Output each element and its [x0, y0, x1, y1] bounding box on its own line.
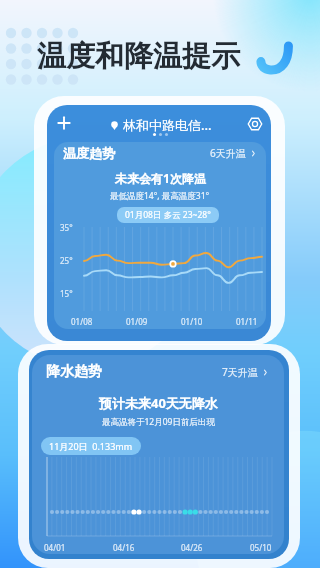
staticText: 降水趋势 — [46, 363, 102, 381]
button[interactable]: Settings — [247, 116, 263, 132]
staticText: 最低温度14°, 最高温度31° — [110, 190, 210, 202]
staticText: 25° — [60, 255, 73, 266]
staticText: 6天升温 — [210, 146, 246, 160]
staticText: 未来会有1次降温 — [115, 170, 206, 186]
staticText: 温度和降温提示 — [37, 38, 240, 75]
staticText: 04/26 — [181, 542, 203, 553]
button[interactable]: Add city — [54, 113, 74, 133]
staticText: 04/16 — [113, 542, 135, 553]
staticText: 01月08日 多云 23~28° — [125, 209, 211, 221]
button[interactable]: 6天升温 — [210, 146, 266, 160]
staticText: 温度趋势 — [63, 145, 115, 161]
staticText: 01/10 — [181, 316, 203, 327]
button[interactable]: 7天升温 — [222, 365, 284, 379]
button[interactable]: 降水趋势 — [29, 350, 289, 559]
staticText: 11月20日 0.133mm — [49, 440, 133, 452]
staticText: 预计未来40天无降水 — [99, 394, 218, 412]
staticText: 最高温将于12月09日前后出现 — [102, 416, 215, 428]
staticText: 01/11 — [236, 316, 258, 327]
staticText: 01/08 — [71, 316, 93, 327]
button[interactable]: Add city — [47, 105, 271, 341]
staticText: 林和中路电信... — [123, 116, 212, 134]
staticText: 7天升温 — [222, 365, 258, 379]
staticText: 15° — [60, 288, 73, 299]
staticText: 35° — [60, 222, 73, 233]
staticText: 01/09 — [126, 316, 148, 327]
staticText: 05/10 — [250, 542, 272, 553]
staticText: 04/01 — [44, 542, 66, 553]
